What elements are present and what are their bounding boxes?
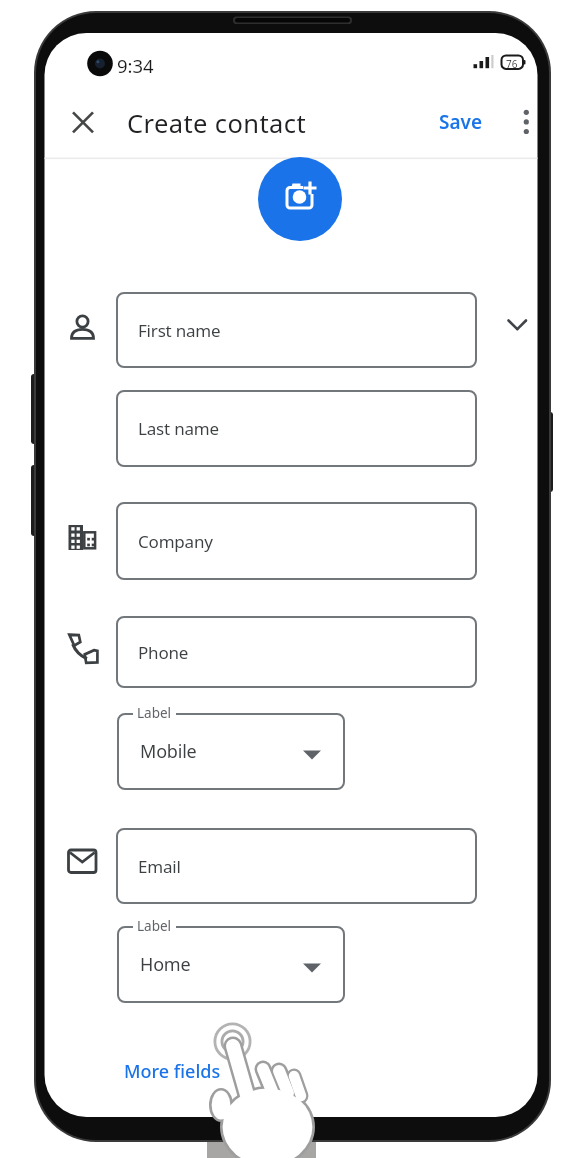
- button[interactable]: Save: [430, 103, 492, 141]
- staticText: More fields: [124, 1059, 221, 1084]
- staticText: Save: [439, 109, 483, 135]
- staticText: Phone: [138, 641, 189, 664]
- button[interactable]: Home: [117, 926, 345, 1003]
- button[interactable]: Company: [116, 502, 477, 580]
- button[interactable]: Email: [116, 828, 477, 904]
- button[interactable]: Mobile: [117, 713, 345, 790]
- button[interactable]: [258, 157, 342, 241]
- staticText: Email: [138, 855, 181, 878]
- button[interactable]: Phone: [116, 616, 477, 688]
- staticText: Label: [137, 917, 172, 935]
- button[interactable]: More fields: [116, 1052, 221, 1090]
- staticText: Home: [140, 952, 191, 977]
- staticText: Create contact: [127, 106, 307, 141]
- staticText: Mobile: [140, 739, 197, 764]
- button[interactable]: Last name: [116, 390, 477, 467]
- staticText: 9:34: [117, 53, 154, 78]
- staticText: 76: [506, 57, 518, 71]
- staticText: First name: [138, 319, 221, 342]
- staticText: Label: [137, 704, 172, 722]
- staticText: Last name: [138, 417, 219, 440]
- button[interactable]: [508, 104, 544, 140]
- button[interactable]: First name: [116, 292, 477, 368]
- staticText: Company: [138, 530, 213, 553]
- button[interactable]: [501, 308, 533, 340]
- button[interactable]: [65, 104, 101, 140]
